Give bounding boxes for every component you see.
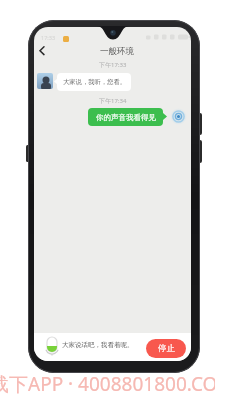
staticText: 载下APP · 4008801800.COM bbox=[0, 371, 215, 397]
staticText: 停止 bbox=[158, 343, 175, 354]
staticText: 下午17:34 bbox=[99, 97, 127, 105]
staticText: 大家说话吧，我看着呢。 bbox=[62, 341, 134, 349]
staticText: 17:33 bbox=[41, 34, 56, 41]
button[interactable]: 你的声音我看得见 bbox=[88, 108, 163, 126]
button[interactable] bbox=[34, 42, 52, 60]
button[interactable]: 大家说话吧，我看着呢。 bbox=[34, 333, 191, 361]
button[interactable]: 停止 bbox=[146, 339, 186, 358]
staticText: 一般环境 bbox=[100, 46, 134, 57]
staticText: 下午17:33 bbox=[99, 61, 127, 69]
staticText: 大家说，我听，您看。 bbox=[63, 78, 126, 86]
button[interactable]: 大家说，我听，您看。 bbox=[57, 73, 131, 91]
button[interactable] bbox=[170, 108, 187, 125]
staticText: 你的声音我看得见 bbox=[96, 113, 156, 122]
